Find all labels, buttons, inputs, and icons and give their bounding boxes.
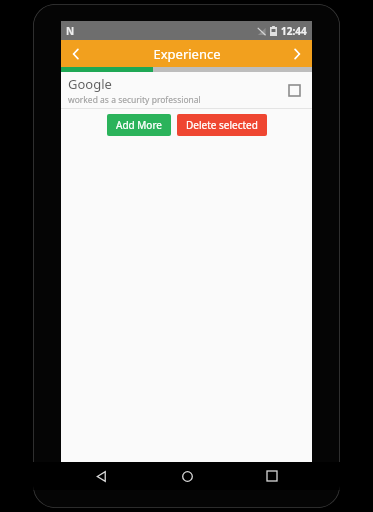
button[interactable]: Select Google experience <box>283 79 305 101</box>
staticText: Experience <box>153 45 221 63</box>
staticText: Add More <box>116 118 162 132</box>
button[interactable]: Home <box>174 463 200 489</box>
staticText: 12:44 <box>281 24 307 38</box>
button[interactable]: Previous <box>61 40 91 67</box>
staticText: Google <box>68 75 112 93</box>
button[interactable]: Back <box>88 463 114 489</box>
button[interactable]: Recents <box>259 463 285 489</box>
staticText: worked as a security professional <box>68 94 201 106</box>
staticText: Delete selected <box>186 118 258 132</box>
button[interactable]: Add More <box>107 114 171 136</box>
button[interactable]: Google <box>61 72 312 108</box>
button[interactable]: Next <box>282 40 312 67</box>
staticText: N <box>66 24 75 38</box>
button[interactable]: Delete selected <box>177 114 267 136</box>
